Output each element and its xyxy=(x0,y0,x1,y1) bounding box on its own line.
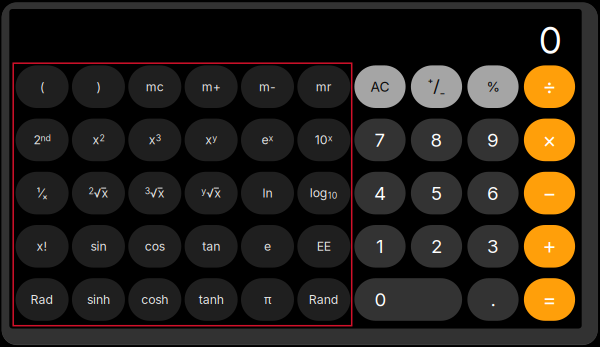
staticText: AC xyxy=(370,78,389,95)
staticText: = xyxy=(542,287,556,312)
button[interactable]: Radians xyxy=(16,278,69,321)
staticText: % xyxy=(486,78,499,95)
button[interactable]: Second functions xyxy=(16,119,69,161)
staticText: 4 xyxy=(374,182,386,204)
staticText: × xyxy=(542,127,556,153)
button[interactable]: Memory recall xyxy=(297,65,350,108)
staticText: ) xyxy=(96,79,100,94)
staticText: tan xyxy=(202,239,220,254)
button[interactable]: One over x xyxy=(16,172,69,214)
button[interactable]: Two xyxy=(411,225,462,268)
button[interactable]: Seven xyxy=(354,119,406,161)
button[interactable]: Memory subtract xyxy=(241,65,294,108)
staticText: EE xyxy=(317,239,331,254)
staticText: cosh xyxy=(141,292,168,307)
button[interactable]: Pi xyxy=(241,278,294,321)
staticText: ex xyxy=(261,133,273,147)
button[interactable]: Eight xyxy=(411,119,462,161)
staticText: cos xyxy=(145,239,165,254)
staticText: m- xyxy=(259,79,276,94)
staticText: y√x xyxy=(201,186,221,200)
button[interactable]: Plus minus xyxy=(411,65,462,108)
button[interactable]: Close parenthesis xyxy=(72,65,125,108)
button[interactable]: Cosine xyxy=(128,225,181,268)
staticText: 2√x xyxy=(88,186,108,200)
staticText: 9 xyxy=(487,129,499,151)
button[interactable]: Zero xyxy=(354,278,462,321)
button[interactable]: 10 to the power x xyxy=(297,119,350,161)
button[interactable]: e to the power x xyxy=(241,119,294,161)
button[interactable]: Decimal point xyxy=(467,278,519,321)
staticText: + xyxy=(542,233,556,259)
staticText: sin xyxy=(90,239,106,254)
staticText: x2 xyxy=(92,133,104,147)
button[interactable]: Hyperbolic cosine xyxy=(128,278,181,321)
staticText: x3 xyxy=(149,133,161,147)
staticText: 10x xyxy=(315,133,333,147)
staticText: ¹⁄ₓ xyxy=(37,186,48,200)
staticText: mc xyxy=(146,79,164,94)
button[interactable]: Memory clear xyxy=(128,65,181,108)
staticText: 6 xyxy=(487,182,499,204)
button[interactable]: Open parenthesis xyxy=(16,65,69,108)
staticText: sinh xyxy=(87,292,110,307)
staticText: − xyxy=(542,180,556,206)
button[interactable]: Log base 10 xyxy=(297,172,350,214)
staticText: 0 xyxy=(374,288,386,311)
staticText: Rand xyxy=(309,292,339,307)
staticText: x! xyxy=(37,239,48,254)
button[interactable]: Five xyxy=(411,172,462,214)
button[interactable]: Three xyxy=(467,225,519,268)
staticText: 3√x xyxy=(145,186,165,200)
button[interactable]: Cube root xyxy=(128,172,181,214)
staticText: 8 xyxy=(430,129,442,151)
button[interactable]: Random xyxy=(297,278,350,321)
staticText: 2 xyxy=(431,235,442,258)
staticText: ÷ xyxy=(542,74,556,100)
staticText: 1 xyxy=(376,235,384,258)
button[interactable]: Euler's number xyxy=(241,225,294,268)
staticText: xy xyxy=(205,133,217,147)
staticText: ln xyxy=(262,186,272,200)
staticText: mr xyxy=(316,79,332,94)
staticText: ( xyxy=(40,79,44,94)
button[interactable]: Hyperbolic sine xyxy=(72,278,125,321)
button[interactable]: Factorial xyxy=(16,225,69,268)
staticText: m+ xyxy=(202,79,221,94)
staticText: 7 xyxy=(374,129,385,151)
staticText: log10 xyxy=(310,186,338,201)
staticText: 5 xyxy=(431,182,442,204)
button[interactable]: One xyxy=(354,225,406,268)
button[interactable]: Four xyxy=(354,172,406,214)
button[interactable]: x cubed xyxy=(128,119,181,161)
staticText: . xyxy=(490,288,495,311)
button[interactable]: x squared xyxy=(72,119,125,161)
button[interactable]: Add xyxy=(524,225,575,268)
button[interactable]: All clear xyxy=(354,65,406,108)
button[interactable]: Subtract xyxy=(524,172,575,214)
staticText: 2nd xyxy=(34,133,51,147)
button[interactable]: Square root xyxy=(72,172,125,214)
staticText: ⁺∕₋ xyxy=(427,76,445,97)
button[interactable]: Equals xyxy=(524,278,575,321)
button[interactable]: Six xyxy=(467,172,519,214)
button[interactable]: x to the power y xyxy=(185,119,238,161)
staticText: π xyxy=(264,292,271,307)
staticText: e xyxy=(264,239,271,254)
staticText: tanh xyxy=(199,292,224,307)
button[interactable]: Divide xyxy=(524,65,575,108)
button[interactable]: Nine xyxy=(467,119,519,161)
button[interactable]: Percent xyxy=(467,65,519,108)
button[interactable]: Memory add xyxy=(185,65,238,108)
staticText: 3 xyxy=(487,235,499,258)
button[interactable]: Tangent xyxy=(185,225,238,268)
button[interactable]: y root of x xyxy=(185,172,238,214)
button[interactable]: Hyperbolic tangent xyxy=(185,278,238,321)
button[interactable]: Multiply xyxy=(524,119,575,161)
button[interactable]: Sine xyxy=(72,225,125,268)
staticText: Rad xyxy=(31,292,54,307)
staticText: 0 xyxy=(539,18,562,63)
button[interactable]: Exponent xyxy=(297,225,350,268)
button[interactable]: Natural logarithm xyxy=(241,172,294,214)
